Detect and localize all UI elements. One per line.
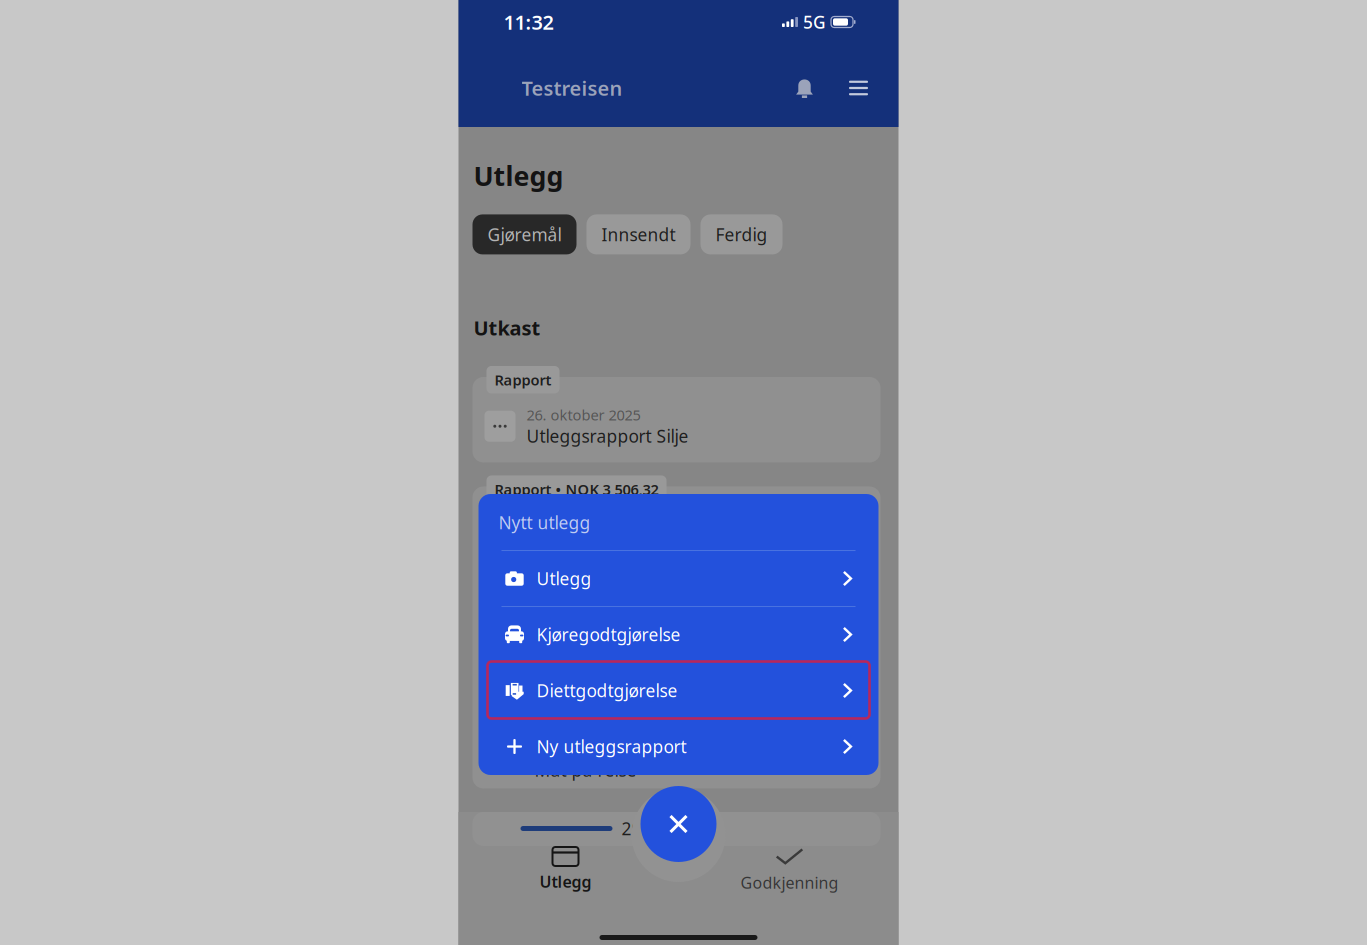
button[interactable]: Ny utleggsrapport [478,718,878,774]
staticText: Gjøremål [487,223,561,246]
staticText: Nytt utlegg [498,511,590,534]
button[interactable]: Lukk [640,786,716,862]
staticText: Utleggsrapport Silje [526,424,688,447]
staticText: Utlegg [536,567,591,590]
staticText: Diettgodtgjørelse [536,679,677,702]
staticText: Innsendt [601,223,675,246]
button[interactable]: Utlegg [478,550,878,606]
staticText: 20, [621,817,646,840]
staticText: 11:32 [503,9,553,35]
staticText: Rapport • NOK 3 506,32 [494,479,658,499]
button[interactable]: Kjøregodtgjørelse [478,606,878,662]
staticText: Kjøregodtgjørelse [536,623,680,646]
button[interactable]: Diettgodtgjørelse [478,662,878,718]
button[interactable]: Gjøremål [472,214,576,254]
button[interactable]: 26. oktober 2025 [458,377,880,462]
staticText: Testreisen [521,75,622,101]
staticText: Utlegg [473,158,563,193]
staticText: 26. oktober 2025 [526,405,640,424]
staticText: 5G [803,10,826,33]
staticText: Ferdig [715,223,767,246]
button[interactable]: Varsler [782,66,826,110]
staticText: Godkjenning [740,872,838,893]
button[interactable]: Meny [836,66,880,110]
staticText: Mat på reise [534,758,636,781]
staticText: Ny utleggsrapport [536,735,686,758]
button[interactable]: Utlegg [491,844,639,892]
button[interactable]: Mat på reise [458,486,880,788]
staticText: Utlegg [539,871,591,892]
staticText: Rapport [494,370,551,389]
staticText: Utkast [473,314,540,341]
button[interactable]: Godkjenning [715,844,863,892]
button[interactable]: Ferdig [700,214,782,254]
button[interactable]: Innsendt [586,214,690,254]
